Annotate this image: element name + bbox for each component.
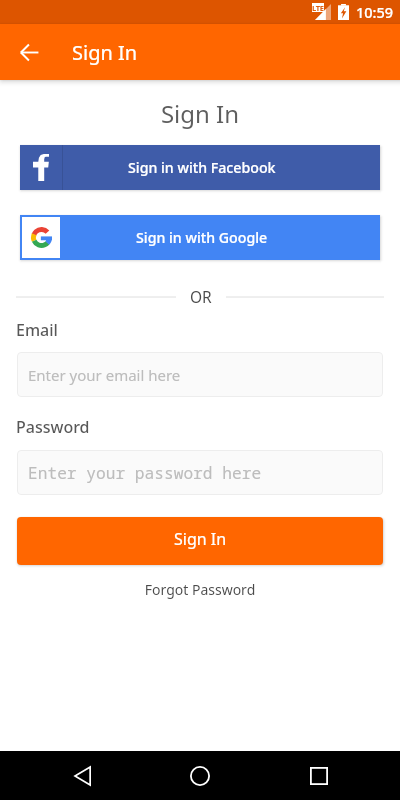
staticText: Sign In	[174, 528, 227, 550]
button[interactable]: Home	[170, 751, 230, 800]
staticText: Sign In	[72, 39, 138, 66]
button[interactable]: Forgot Password	[0, 580, 400, 599]
button[interactable]: Sign in with Google	[20, 215, 380, 260]
button[interactable]: Back	[52, 751, 112, 800]
staticText: Sign in with Google	[136, 228, 268, 247]
staticText: OR	[190, 286, 212, 306]
staticText: Password	[16, 416, 90, 438]
button[interactable]: Enter your password here	[17, 450, 383, 495]
staticText: LTE	[312, 3, 324, 12]
staticText: Sign in with Facebook	[128, 158, 276, 177]
button[interactable]: Recent apps	[289, 751, 349, 800]
button[interactable]: Enter your email here	[17, 352, 383, 397]
staticText: Enter your password here	[28, 462, 262, 484]
staticText: Email	[16, 319, 58, 341]
button[interactable]: Back	[7, 30, 51, 74]
staticText: Sign In	[0, 97, 400, 130]
button[interactable]: Sign in with Facebook	[20, 145, 380, 190]
staticText: 10:59	[356, 2, 394, 22]
staticText: Enter your email here	[28, 365, 181, 385]
button[interactable]: Sign In	[17, 517, 383, 565]
